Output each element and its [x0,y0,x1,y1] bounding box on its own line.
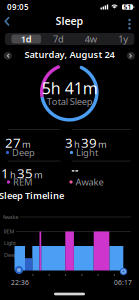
staticText: Deep [4,251,17,259]
button[interactable] [119,267,127,275]
staticText: Awake [2,213,18,221]
staticText: REM [13,176,32,188]
staticText: m [22,138,31,150]
staticText: 35 [17,164,33,182]
staticText: Saturday, August 24 [24,48,114,61]
button[interactable] [126,51,135,60]
staticText: 06:17 [114,278,132,287]
staticText: h [74,138,80,150]
staticText: m [98,138,107,150]
staticText: Light [4,239,16,247]
staticText: 3 [65,134,73,151]
staticText: Sleep [55,14,83,28]
staticText: REM [3,228,14,235]
staticText: 7d [53,33,64,45]
button[interactable]: 7d [43,33,75,45]
staticText: 51 [123,3,131,11]
staticText: 1d [21,33,32,45]
staticText: m [34,168,43,181]
staticText: 4w [85,33,97,45]
staticText: 1 [1,164,9,182]
button[interactable] [122,17,136,31]
staticText: Sleep Timeline [0,189,64,202]
button[interactable]: 4w [75,33,107,45]
staticText: 39 [81,134,97,151]
staticText: 5h 41m [42,77,98,99]
staticText: 1y [118,33,128,45]
button[interactable]: 1d [11,34,41,43]
button[interactable] [3,51,12,60]
staticText: Deep [12,146,35,159]
staticText: 27 [5,134,21,151]
button[interactable]: 1y [107,33,139,45]
staticText: 22:36 [11,278,29,287]
staticText: 09:05 [7,1,29,12]
staticText: Awake [76,176,104,188]
staticText: Light [76,146,98,159]
button[interactable] [15,266,23,274]
staticText: Total Sleep [47,95,93,108]
staticText: h [10,168,16,181]
button[interactable] [0,14,14,28]
